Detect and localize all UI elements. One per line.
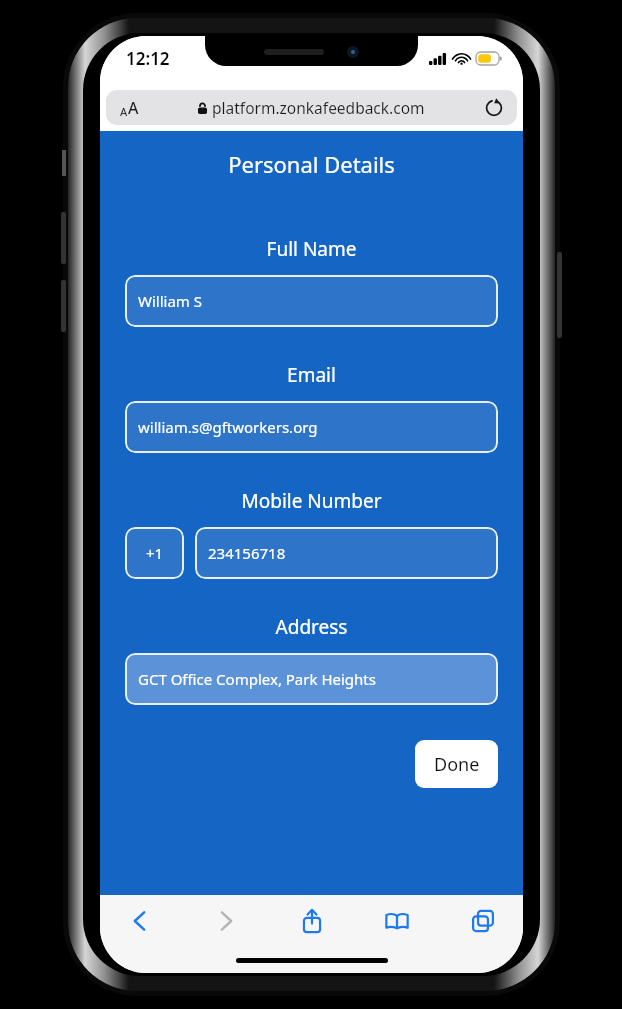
staticText: Done (434, 752, 480, 777)
button[interactable]: Text size (106, 90, 517, 125)
staticText: Full Name (100, 236, 523, 262)
staticText: A (128, 97, 139, 119)
button[interactable]: GCT Office Complex, Park Heights (125, 653, 498, 705)
button[interactable]: Bookmarks (366, 895, 428, 947)
staticText: 234156718 (208, 543, 286, 563)
button[interactable]: William S (125, 275, 498, 327)
staticText: GCT Office Complex, Park Heights (138, 669, 376, 689)
staticText: A (120, 104, 128, 119)
staticText: Email (100, 362, 523, 388)
button[interactable]: Back (109, 895, 171, 947)
button[interactable]: Tabs (452, 895, 514, 947)
staticText: Personal Details (100, 149, 523, 179)
button[interactable]: Text size (120, 97, 139, 119)
button[interactable]: Reload (484, 98, 504, 118)
staticText: William S (138, 291, 203, 311)
staticText: Mobile Number (100, 488, 523, 514)
staticText: william.s@gftworkers.org (138, 417, 318, 437)
button[interactable]: Forward (195, 895, 257, 947)
staticText: 12:12 (126, 47, 170, 70)
staticText: platform.zonkafeedback.com (212, 97, 425, 118)
staticText: Address (100, 614, 523, 640)
button[interactable]: Done (415, 740, 498, 788)
button[interactable]: Share (281, 895, 343, 947)
button[interactable]: 234156718 (195, 527, 498, 579)
button[interactable]: william.s@gftworkers.org (125, 401, 498, 453)
button[interactable]: +1 (125, 527, 184, 579)
staticText: +1 (146, 543, 164, 563)
